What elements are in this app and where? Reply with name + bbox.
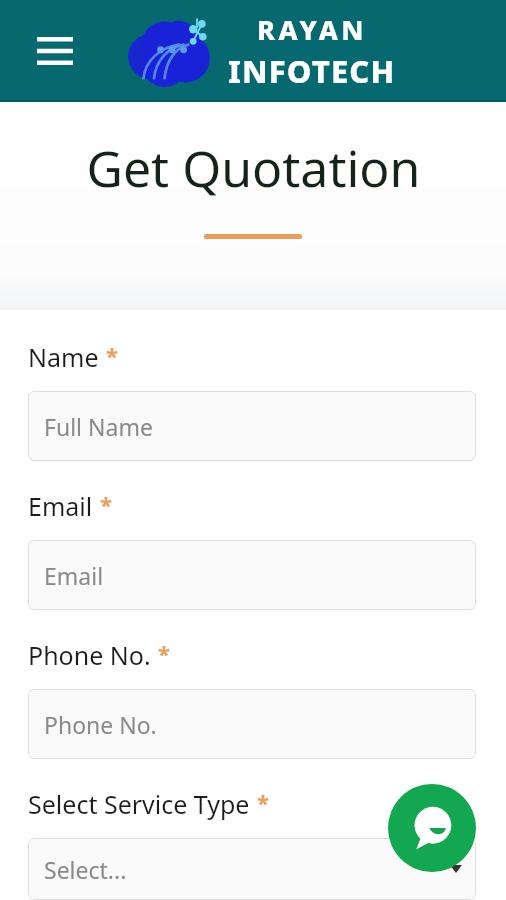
staticText: Phone No.: [28, 638, 151, 672]
staticText: Get Quotation: [86, 134, 421, 202]
button[interactable]: Phone No.: [28, 689, 476, 759]
button[interactable]: Open navigation menu: [26, 25, 84, 77]
staticText: *: [100, 489, 112, 519]
button[interactable]: Open chat: [388, 784, 476, 872]
staticText: RAYAN: [257, 11, 368, 48]
staticText: Select...: [44, 854, 127, 885]
staticText: *: [158, 638, 170, 668]
button[interactable]: Full Name: [28, 391, 476, 461]
staticText: Name: [28, 340, 99, 374]
staticText: INFOTECH: [228, 50, 396, 92]
staticText: Select Service Type: [28, 787, 250, 821]
staticText: Phone No.: [44, 709, 157, 740]
staticText: *: [106, 340, 118, 370]
button[interactable]: Email: [28, 540, 476, 610]
staticText: *: [257, 787, 269, 817]
staticText: Full Name: [44, 411, 153, 442]
staticText: Email: [28, 489, 93, 523]
button[interactable]: Select...: [28, 838, 476, 900]
staticText: Email: [44, 560, 104, 591]
button[interactable]: RAYAN: [126, 11, 396, 92]
